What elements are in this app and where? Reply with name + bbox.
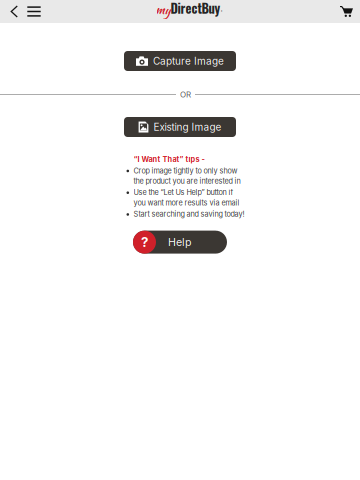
button[interactable]: Back xyxy=(5,0,23,23)
staticText: my xyxy=(155,1,170,19)
staticText: . xyxy=(220,4,222,13)
staticText: you want more results via email xyxy=(133,198,239,207)
button[interactable]: Help xyxy=(133,231,227,254)
button[interactable]: Capture Image xyxy=(124,51,236,71)
staticText: the product you are interested in xyxy=(133,177,240,186)
staticText: OR xyxy=(180,90,191,99)
staticText: Capture Image xyxy=(153,55,224,67)
staticText: Use the “Let Us Help” button if xyxy=(133,188,233,197)
staticText: DirectBuy xyxy=(170,0,220,17)
staticText: “I Want That” tips - xyxy=(133,155,204,164)
button[interactable]: Shopping cart xyxy=(338,0,355,23)
button[interactable]: Menu xyxy=(23,0,45,23)
staticText: Start searching and saving today! xyxy=(133,210,244,219)
staticText: ? xyxy=(141,234,148,250)
staticText: Existing Image xyxy=(153,121,221,133)
button[interactable]: Existing Image xyxy=(124,117,236,137)
staticText: Crop image tightly to only show xyxy=(133,166,237,175)
staticText: Help xyxy=(168,236,192,249)
